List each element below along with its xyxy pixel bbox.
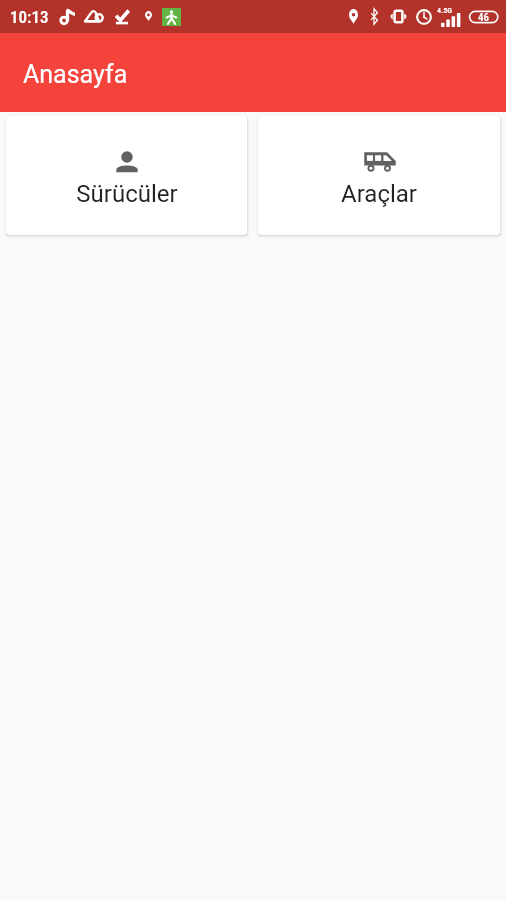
staticText: 4.5G [437, 6, 452, 15]
button[interactable]: Sürücüler [6, 116, 247, 235]
staticText: 10:13 [10, 7, 49, 27]
staticText: Anasayfa [23, 60, 128, 89]
staticText: 46 [478, 11, 490, 24]
button[interactable]: Araçlar [258, 116, 500, 235]
staticText: Araçlar [341, 180, 417, 208]
staticText: Sürücüler [76, 180, 178, 208]
